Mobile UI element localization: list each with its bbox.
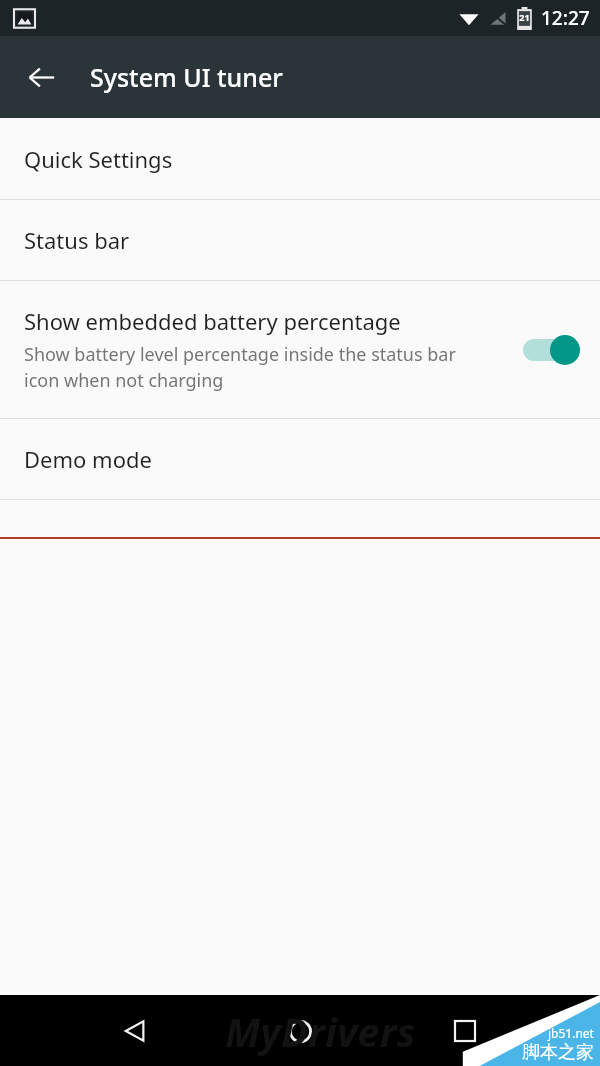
staticText: MyDrivers xyxy=(225,1004,416,1058)
button[interactable]: Recent apps xyxy=(438,1004,492,1058)
staticText: jb51.net xyxy=(548,1025,594,1041)
staticText: Quick Settings xyxy=(24,144,173,174)
staticText: Show embedded battery percentage xyxy=(24,306,401,336)
staticText: 脚本之家 xyxy=(522,1041,594,1064)
button[interactable]: Back xyxy=(12,48,70,106)
button[interactable]: Home xyxy=(273,1004,327,1058)
staticText: Status bar xyxy=(24,225,130,255)
button[interactable]: Back xyxy=(108,1004,162,1058)
button[interactable]: Demo mode xyxy=(0,419,600,499)
button[interactable]: Quick Settings xyxy=(0,118,600,199)
button[interactable]: Show embedded battery percentage xyxy=(0,281,600,418)
staticText: System UI tuner xyxy=(90,60,283,94)
button[interactable]: Status bar xyxy=(0,200,600,280)
staticText: Show battery level percentage inside the… xyxy=(24,342,464,393)
staticText: Demo mode xyxy=(24,444,152,474)
button[interactable]: Show embedded battery percentage toggle xyxy=(514,328,580,372)
staticText: 21 xyxy=(519,11,530,23)
staticText: 12:27 xyxy=(541,5,590,31)
